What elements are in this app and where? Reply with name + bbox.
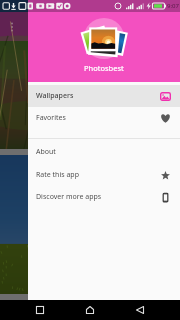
button[interactable]: Home [81, 301, 99, 319]
button[interactable]: Recents [31, 301, 49, 319]
button[interactable]: About [28, 139, 180, 164]
button[interactable]: Favorites [28, 107, 180, 129]
staticText: Wallpapers [36, 91, 74, 101]
button[interactable]: Back [131, 301, 149, 319]
staticText: Photosbest [84, 63, 124, 73]
staticText: Rate this app [36, 170, 79, 180]
button[interactable]: Discover more apps [28, 186, 180, 208]
staticText: Favorites [36, 113, 66, 123]
staticText: 9:07 [167, 2, 179, 10]
staticText: Discover more apps [36, 192, 102, 202]
button[interactable]: Rate this app [28, 164, 180, 186]
staticText: About [36, 147, 56, 157]
button[interactable]: Wallpapers [28, 85, 180, 107]
